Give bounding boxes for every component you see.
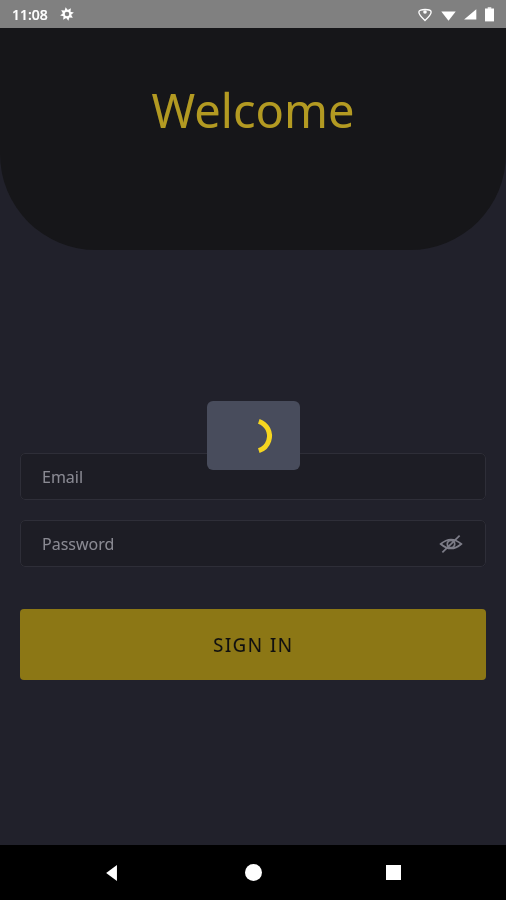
- button[interactable]: Home: [226, 845, 281, 900]
- staticText: Email: [42, 466, 464, 488]
- staticText: Password: [42, 533, 438, 555]
- button[interactable]: Toggle password visibility: [438, 531, 464, 557]
- button[interactable]: Email: [20, 453, 486, 500]
- button[interactable]: SIGN IN: [20, 609, 486, 680]
- staticText: 11:08: [12, 5, 48, 24]
- button[interactable]: Back: [85, 845, 140, 900]
- button[interactable]: Password: [20, 520, 486, 567]
- button[interactable]: Recent apps: [366, 845, 421, 900]
- staticText: SIGN IN: [213, 632, 294, 658]
- staticText: Welcome: [0, 78, 506, 142]
